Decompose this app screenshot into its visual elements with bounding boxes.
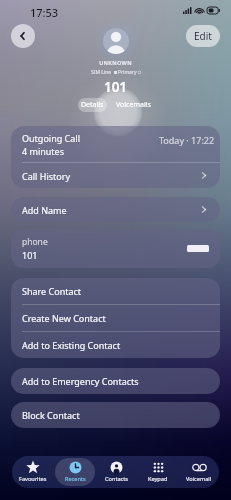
staticText: phone xyxy=(22,236,48,248)
button[interactable]: Add Name xyxy=(11,197,220,222)
button[interactable]: Details xyxy=(78,98,107,112)
staticText: Add Name xyxy=(22,204,199,216)
button[interactable]: Outgoing Call xyxy=(11,126,220,162)
button[interactable]: Edit xyxy=(186,25,220,47)
button[interactable]: Voicemails xyxy=(113,98,154,112)
staticText: Edit xyxy=(194,29,212,43)
staticText: Call History xyxy=(22,170,199,182)
staticText: Contacts xyxy=(105,475,128,483)
staticText: Add to Existing Contact xyxy=(22,339,121,351)
button[interactable]: Back xyxy=(11,24,35,48)
staticText: Create New Contact xyxy=(22,312,106,324)
staticText: Today · 17:22 xyxy=(159,134,215,146)
staticText: 101 xyxy=(0,78,231,96)
staticText: 4 minutes xyxy=(22,145,64,157)
staticText: Recents xyxy=(65,475,86,483)
staticText: Favourites xyxy=(19,475,47,483)
button[interactable]: Create New Contact xyxy=(11,305,220,331)
staticText: Share Contact xyxy=(22,285,82,297)
staticText: 101 xyxy=(22,249,38,261)
button[interactable]: Add to Existing Contact xyxy=(11,332,220,358)
button[interactable]: Call History xyxy=(11,163,220,188)
button[interactable]: Contacts xyxy=(97,458,136,486)
staticText: Primary xyxy=(118,69,137,76)
button[interactable]: Favourites xyxy=(13,458,53,486)
button[interactable]: Block Contact xyxy=(11,402,220,428)
button[interactable]: Recents xyxy=(55,458,95,486)
button[interactable]: Add to Emergency Contacts xyxy=(11,368,220,394)
staticText: UNKNOWN xyxy=(0,59,231,66)
staticText: Voicemail xyxy=(186,475,212,483)
staticText: Details xyxy=(81,100,104,110)
staticText: Block Contact xyxy=(22,409,80,421)
staticText: Keypad xyxy=(148,475,168,483)
staticText: Outgoing Call xyxy=(22,132,80,144)
button[interactable]: Share Contact xyxy=(11,278,220,304)
staticText: Add to Emergency Contacts xyxy=(22,375,139,387)
button[interactable]: Voicemail xyxy=(179,458,218,486)
button[interactable]: phone xyxy=(11,229,220,268)
button[interactable]: Keypad xyxy=(138,458,177,486)
staticText: SIM Line xyxy=(91,69,112,76)
staticText: 17:53 xyxy=(30,5,59,20)
staticText: Voicemails xyxy=(116,100,151,110)
